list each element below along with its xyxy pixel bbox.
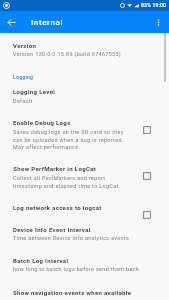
button[interactable]: Enable Debug Logs [0, 110, 169, 155]
staticText: Collect all PerfMarkers and report times… [13, 175, 129, 189]
button[interactable]: Log network access to logcat [0, 193, 169, 217]
button[interactable]: Device Info Event Interval [0, 217, 169, 248]
staticText: how long to batch logs before send them … [13, 266, 140, 272]
button[interactable]: Logging Level [0, 83, 169, 110]
staticText: Device Info Event Interval [13, 226, 91, 233]
staticText: Show PerfMarker in LogCat [13, 165, 96, 172]
staticText: Version [13, 42, 37, 49]
button[interactable]: Version [0, 36, 169, 66]
staticText: Log network access to logcat [13, 204, 102, 211]
button[interactable]: Navigate up [0, 11, 22, 33]
staticText: Saves debug logs on the SD card so they … [13, 129, 129, 150]
staticText: Logging [13, 74, 34, 80]
button[interactable]: Show PerfMarker in LogCat [0, 155, 169, 193]
staticText: Default [13, 98, 33, 104]
staticText: Logging Level [13, 88, 56, 95]
button[interactable]: Show navigation events when available [0, 280, 169, 300]
button[interactable]: Batch Log Interval [0, 248, 169, 280]
staticText: Version 130.0.0.15.89 (build 67467555) [13, 51, 122, 57]
staticText: Show navigation events when available [13, 289, 132, 296]
staticText: Batch Log Interval [13, 257, 69, 264]
button[interactable]: More options [147, 11, 169, 33]
staticText: Time between Device Info analytics event… [13, 235, 130, 241]
staticText: Internal [31, 18, 64, 27]
staticText: Enable Debug Logs [13, 119, 71, 126]
staticText: 83% 19:00 [141, 2, 167, 8]
